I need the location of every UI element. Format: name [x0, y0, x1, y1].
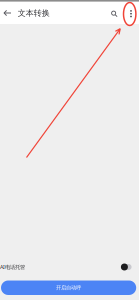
staticText: 开启自动呼 — [56, 284, 81, 291]
button[interactable]: Search — [107, 3, 121, 25]
button[interactable]: 开启自动呼 — [1, 280, 136, 295]
staticText: AI电话托管 — [0, 263, 25, 270]
button[interactable]: Back — [0, 2, 15, 24]
button[interactable]: More options — [124, 3, 138, 25]
staticText: 文本转换 — [18, 8, 50, 18]
button[interactable]: AI电话托管 — [120, 263, 131, 270]
